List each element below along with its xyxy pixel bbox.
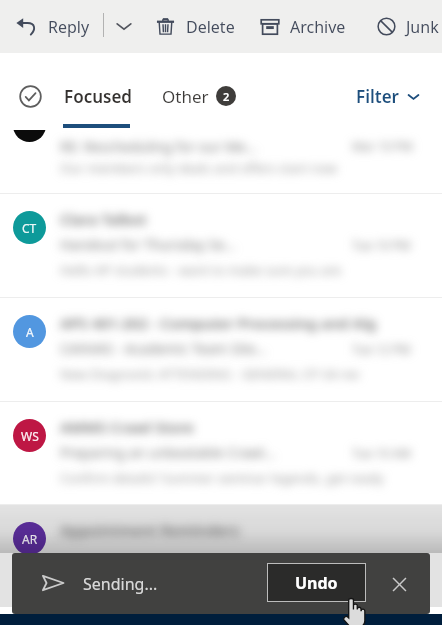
staticText: Handout for Thursday Se... [60, 235, 236, 254]
staticText: Hello AP students - want to make sure yo… [60, 261, 342, 279]
staticText: CT [22, 220, 37, 236]
staticText: Focused [64, 85, 132, 108]
staticText: 2 [223, 89, 230, 104]
button[interactable]: Filter [351, 81, 425, 111]
button[interactable]: Archive [255, 8, 351, 45]
staticText: Archive [290, 16, 346, 38]
staticText: A [26, 324, 34, 340]
staticText: Appointment Reminders [60, 520, 240, 540]
staticText: Preparing an unbeatable Crawl... [60, 443, 276, 462]
staticText: Confirm details? Summer seminar legends,… [60, 469, 384, 487]
button[interactable]: Other [157, 81, 241, 111]
staticText: Sending... [83, 573, 158, 595]
staticText: Tue 12 PM [352, 341, 411, 357]
staticText: Undo [295, 572, 338, 594]
staticText: Tue 10 PM [352, 237, 411, 253]
button[interactable]: Sending [40, 570, 66, 596]
button[interactable]: WS [0, 402, 442, 504]
staticText: Our members only deals and offers start … [60, 159, 338, 177]
button[interactable]: Focused [58, 81, 138, 111]
staticText: AMMS Crawl Store [60, 417, 194, 437]
staticText: RE: Rescheduling for our Me... [60, 137, 257, 156]
staticText: APS 401-202 - Computer Processing and Al… [60, 313, 377, 333]
staticText: New Diagnostic ATTENDING - GENERAL CP-34… [60, 365, 360, 383]
staticText: Tue 10 AM [352, 445, 411, 461]
staticText: Junk [406, 16, 439, 38]
staticText: Mar 10 PM [352, 138, 413, 154]
button[interactable]: Junk [372, 8, 442, 45]
staticText: Delete [186, 16, 235, 38]
staticText: CANVAS - Academic Team Site... [60, 339, 267, 358]
button[interactable]: Delete [151, 8, 240, 45]
button[interactable]: Reply [11, 8, 95, 45]
staticText: Other [162, 85, 209, 108]
staticText: Clara Talbot [60, 209, 147, 229]
button[interactable]: Undo [267, 563, 366, 602]
staticText: Filter [356, 85, 399, 108]
button[interactable]: CT [0, 194, 442, 296]
staticText: WS [21, 428, 39, 444]
button[interactable]: Dismiss [386, 571, 412, 597]
button[interactable]: AR [0, 505, 442, 607]
button[interactable]: More reply options [109, 11, 138, 40]
staticText: Reply [48, 16, 90, 38]
button[interactable]: A [0, 298, 442, 400]
button[interactable]: RE: Rescheduling for our Me... [0, 130, 442, 193]
staticText: AR [22, 531, 38, 547]
button[interactable]: Focused inbox [17, 83, 43, 109]
